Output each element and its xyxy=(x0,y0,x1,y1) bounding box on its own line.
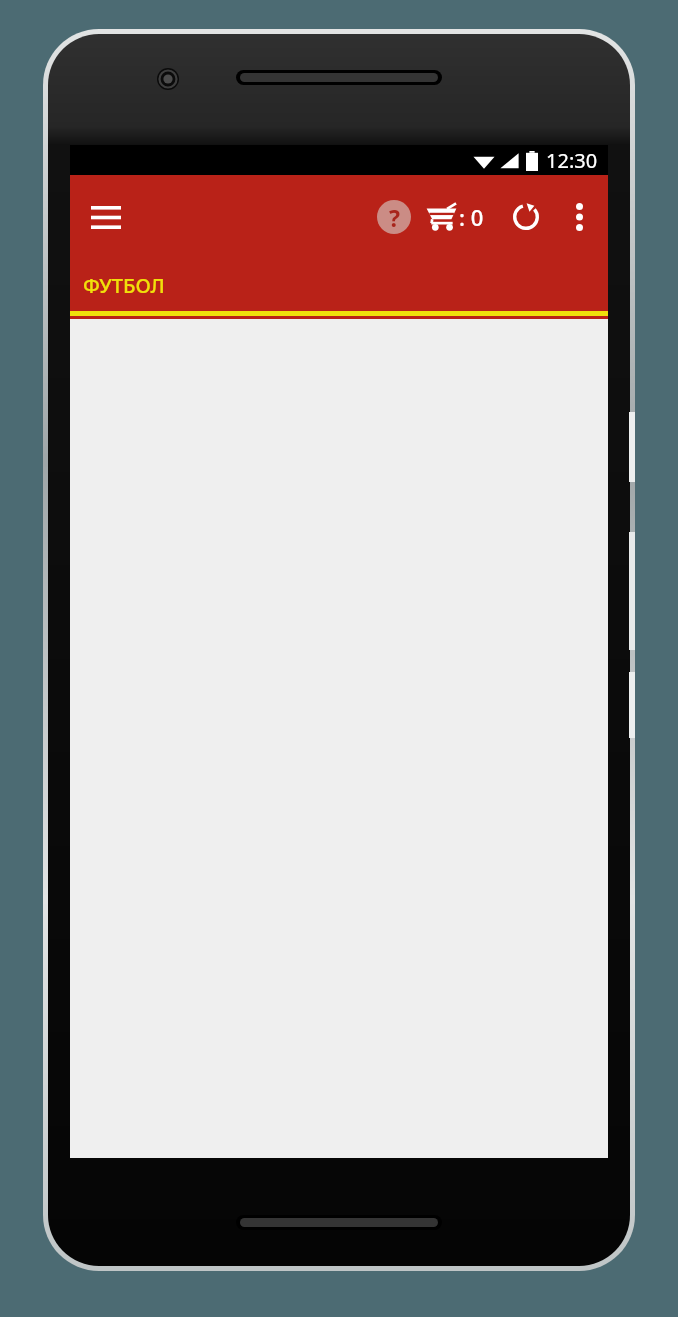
staticText: : 0 xyxy=(459,202,484,232)
button[interactable]: : 0 xyxy=(421,192,489,242)
button[interactable]: Open navigation menu xyxy=(77,188,135,246)
staticText: ФУТБОЛ xyxy=(83,272,165,299)
button[interactable]: Refresh xyxy=(499,190,553,244)
button[interactable]: More options xyxy=(553,191,605,243)
staticText: ? xyxy=(389,202,400,233)
button[interactable]: ФУТБОЛ xyxy=(70,259,608,319)
button[interactable]: Help xyxy=(367,190,421,244)
staticText: 12:30 xyxy=(546,147,598,174)
